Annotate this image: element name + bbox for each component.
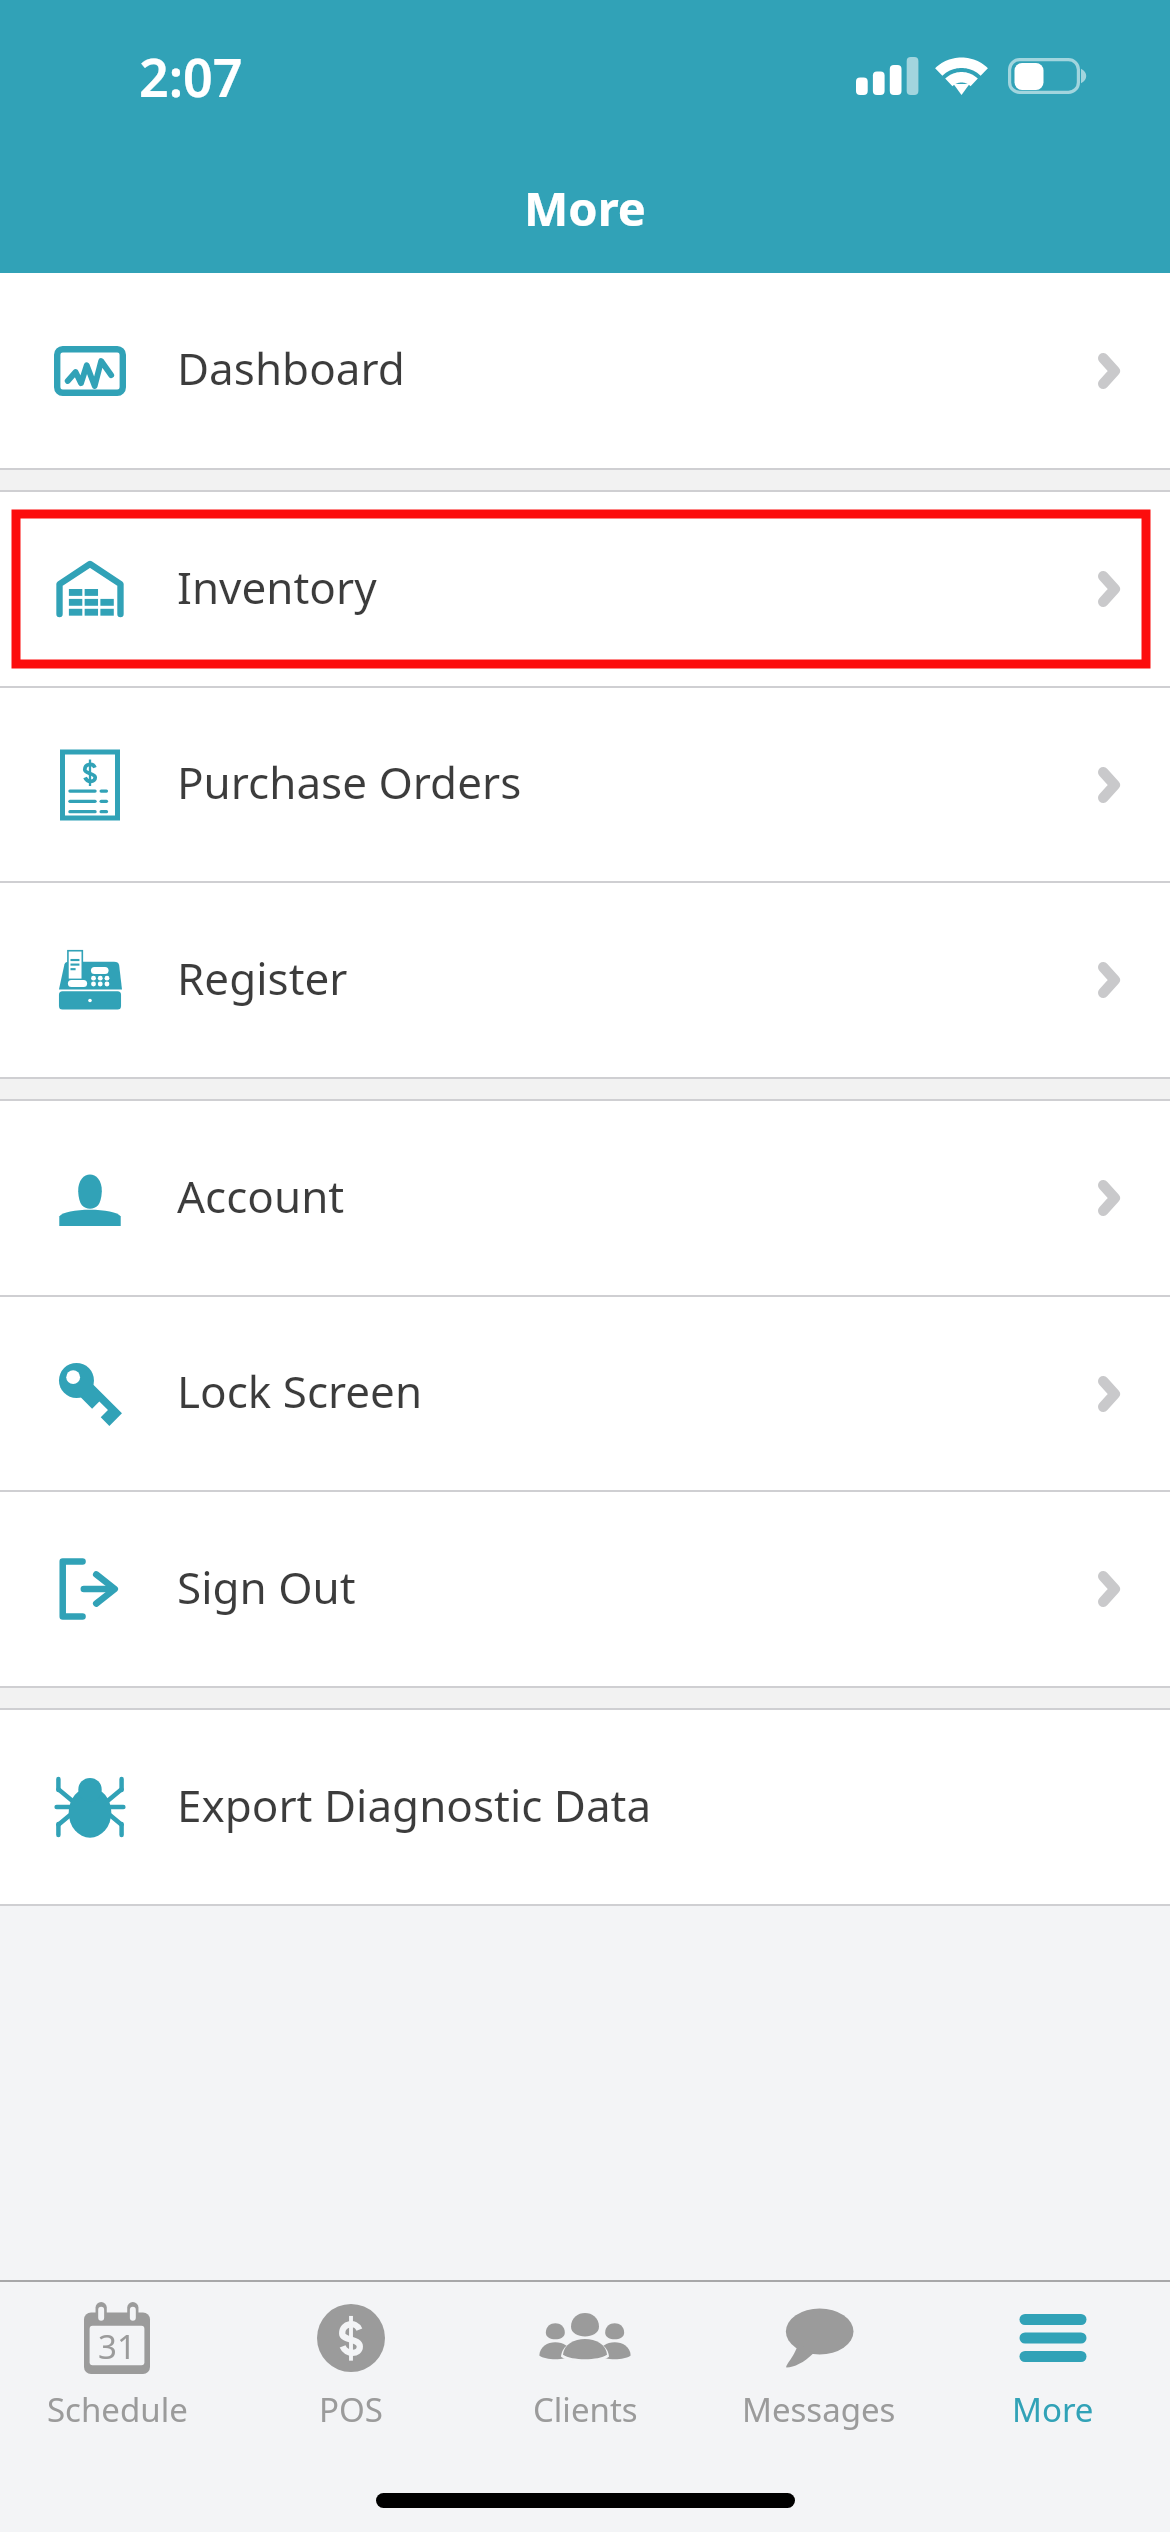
- staticText: Clients: [533, 2387, 638, 2430]
- button[interactable]: Inventory: [0, 492, 1170, 686]
- button[interactable]: Messages: [702, 2282, 936, 2430]
- staticText: Messages: [742, 2387, 896, 2430]
- staticText: 2:07: [139, 41, 243, 112]
- button[interactable]: Export Diagnostic Data: [0, 1710, 1170, 1904]
- button[interactable]: Account: [0, 1101, 1170, 1295]
- staticText: Account: [177, 1166, 345, 1226]
- staticText: Inventory: [177, 557, 377, 617]
- staticText: More: [1012, 2387, 1094, 2430]
- staticText: Schedule: [47, 2387, 188, 2430]
- staticText: Sign Out: [177, 1557, 356, 1617]
- staticText: POS: [319, 2387, 383, 2430]
- button[interactable]: Dashboard: [0, 273, 1170, 468]
- staticText: Lock Screen: [177, 1361, 423, 1421]
- button[interactable]: More: [936, 2282, 1170, 2430]
- button[interactable]: 31: [0, 2282, 234, 2430]
- button[interactable]: POS: [234, 2282, 468, 2430]
- button[interactable]: Clients: [468, 2282, 702, 2430]
- staticText: Dashboard: [177, 338, 405, 398]
- staticText: Register: [177, 948, 348, 1008]
- button[interactable]: Register: [0, 883, 1170, 1077]
- button[interactable]: Purchase Orders: [0, 688, 1170, 881]
- staticText: 31: [98, 2324, 136, 2369]
- button[interactable]: Lock Screen: [0, 1297, 1170, 1490]
- staticText: Purchase Orders: [177, 752, 522, 812]
- staticText: More: [524, 176, 646, 240]
- button[interactable]: Sign Out: [0, 1492, 1170, 1686]
- staticText: Export Diagnostic Data: [177, 1775, 652, 1835]
